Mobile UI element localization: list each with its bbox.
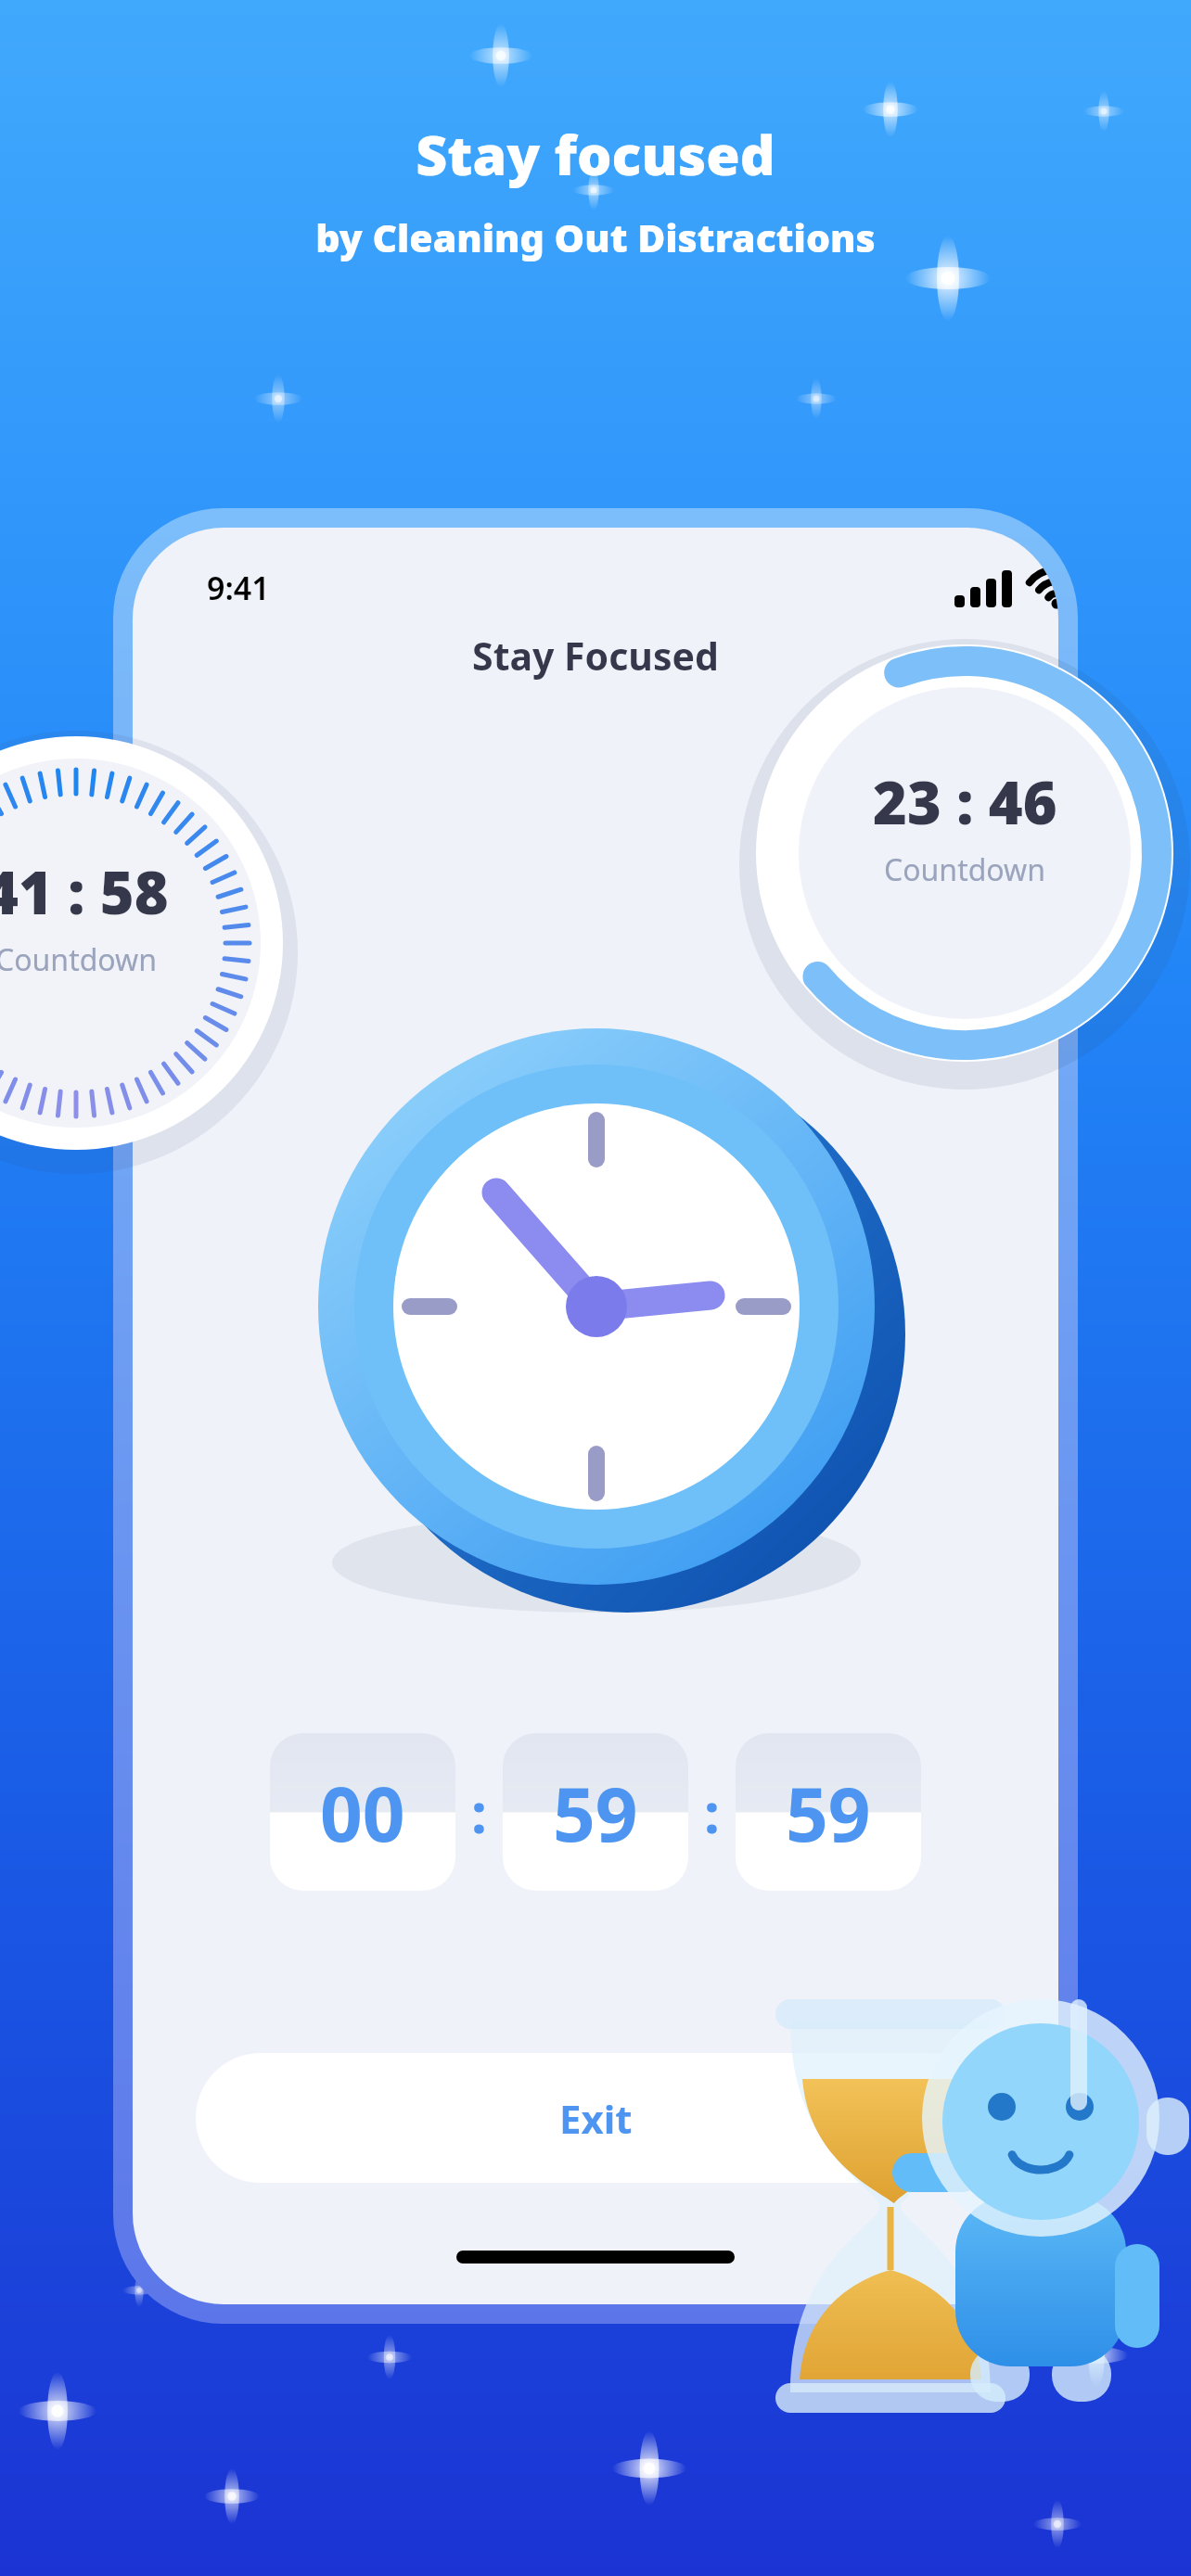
staticText: Countdown (884, 849, 1046, 890)
other: Signal, Wi-Fi and battery status (940, 565, 1058, 611)
button[interactable]: 59 (503, 1733, 688, 1891)
button[interactable]: 23 : 46 (751, 762, 1178, 948)
button[interactable]: 00 (270, 1733, 455, 1891)
staticText: Stay focused (416, 117, 775, 191)
staticText: 9:41 (207, 567, 270, 609)
staticText: 23 : 46 (873, 762, 1057, 842)
button[interactable]: 41 : 58 (0, 852, 289, 1038)
staticText: by Cleaning Out Distractions (315, 211, 876, 263)
staticText: : (704, 1774, 720, 1850)
staticText: : (471, 1774, 487, 1850)
staticText: Countdown (0, 939, 158, 980)
staticText: Stay Focused (133, 630, 1058, 682)
staticText: 59 (553, 1762, 638, 1863)
button[interactable]: 59 (736, 1733, 921, 1891)
button[interactable]: Exit (196, 2053, 995, 2183)
staticText: 59 (786, 1762, 871, 1863)
staticText: 41 : 58 (0, 852, 169, 932)
staticText: 00 (320, 1762, 405, 1863)
staticText: Exit (559, 2092, 633, 2145)
